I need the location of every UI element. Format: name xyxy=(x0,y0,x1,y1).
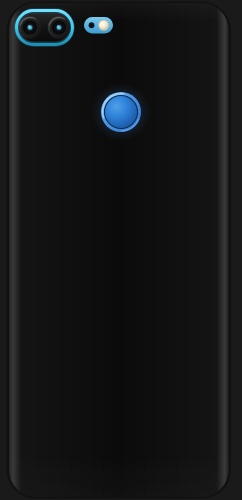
button[interactable]: LED flash and sensor xyxy=(84,17,113,34)
button[interactable]: Fingerprint sensor xyxy=(101,92,141,132)
button[interactable]: Dual camera module xyxy=(16,10,73,45)
